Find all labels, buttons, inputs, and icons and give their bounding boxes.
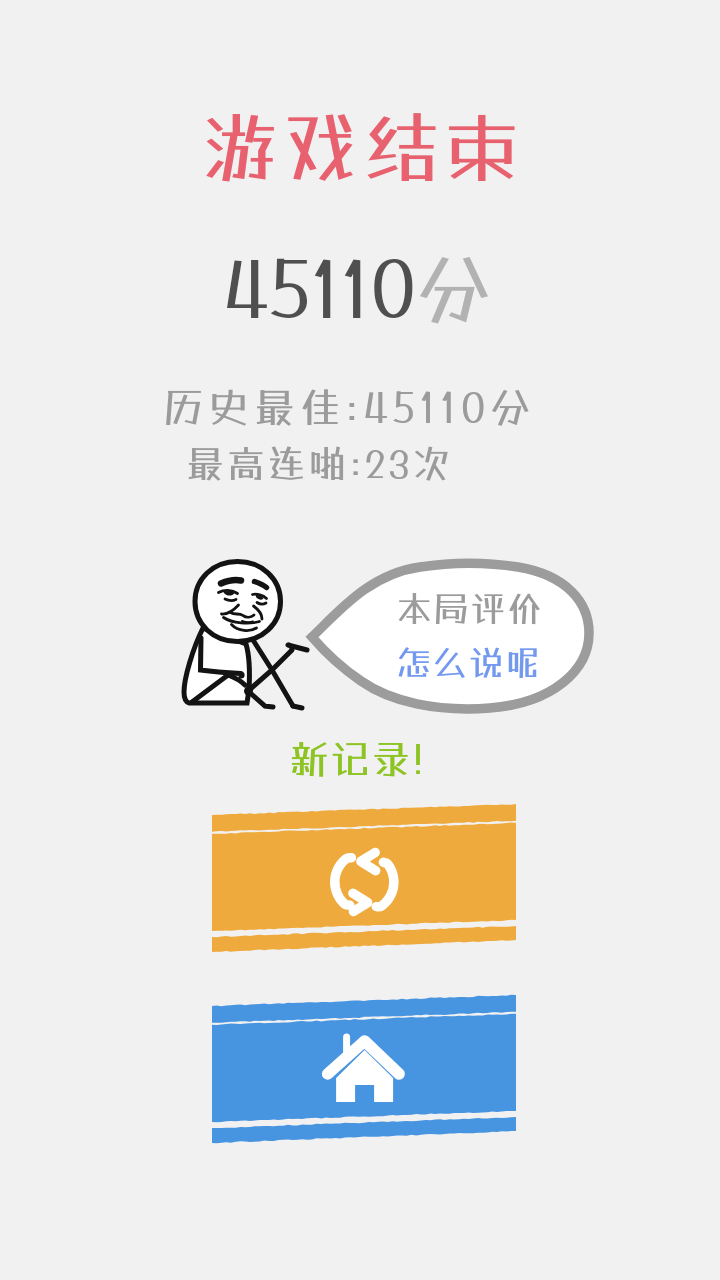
staticText: 45110分 <box>223 243 492 333</box>
staticText: 新记录! <box>290 736 426 782</box>
staticText: 最高连啪:23次 <box>186 441 454 486</box>
button[interactable]: Home <box>212 991 516 1151</box>
staticText: 本局评价 <box>397 588 544 629</box>
staticText: 怎么说呢 <box>396 642 542 683</box>
staticText: 历史最佳:45110分 <box>163 383 536 431</box>
button[interactable]: Play again <box>212 800 516 960</box>
staticText: 游戏结束 <box>202 102 525 192</box>
